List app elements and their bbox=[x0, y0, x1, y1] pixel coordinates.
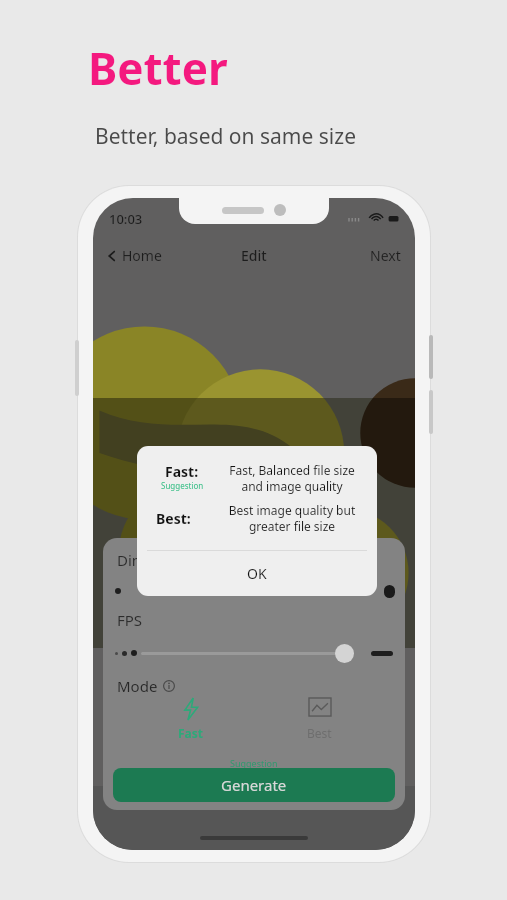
button[interactable]: Fast mode bbox=[161, 698, 221, 758]
staticText: Suggestion bbox=[230, 757, 278, 769]
staticText: Generate bbox=[221, 775, 287, 795]
staticText: Fast bbox=[178, 725, 204, 741]
staticText: Fast, Balanced file size and image quali… bbox=[219, 462, 365, 494]
button[interactable]: Home bbox=[105, 246, 162, 265]
staticText: Mode bbox=[117, 676, 158, 696]
staticText: 10:03 bbox=[109, 210, 143, 228]
staticText: OK bbox=[247, 564, 267, 583]
staticText: Best bbox=[307, 725, 332, 741]
button[interactable]: Next bbox=[370, 246, 401, 265]
button[interactable]: OK bbox=[137, 551, 377, 596]
staticText: Better bbox=[88, 38, 228, 98]
staticText: Fast: bbox=[165, 462, 199, 481]
button[interactable]: Generate bbox=[113, 768, 395, 802]
staticText: Better, based on same size bbox=[95, 122, 356, 151]
staticText: Dimension bbox=[117, 550, 193, 570]
staticText: Suggestion bbox=[161, 480, 204, 491]
button[interactable]: Best mode bbox=[289, 698, 349, 758]
staticText: Edit bbox=[241, 246, 267, 265]
staticText: Best image quality but greater file size bbox=[219, 502, 365, 534]
staticText: FPS bbox=[117, 610, 143, 630]
staticText: Home bbox=[122, 246, 162, 265]
staticText: Best: bbox=[156, 509, 191, 528]
